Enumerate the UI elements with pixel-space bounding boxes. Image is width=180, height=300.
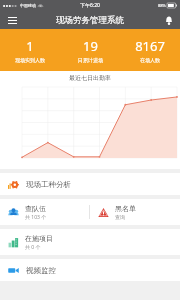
staticText: 最近七日出勤率	[0, 74, 180, 82]
button[interactable]: 现场工种分析	[0, 173, 180, 195]
staticText: 现场劳务管理系统	[56, 15, 124, 26]
staticText: 黑名单	[115, 204, 136, 213]
button[interactable]: Menu	[0, 11, 24, 29]
staticText: 查队伍	[25, 204, 46, 213]
button[interactable]: 1	[0, 29, 60, 71]
staticText: 共 0 个	[25, 244, 41, 251]
button[interactable]: 视频监控	[0, 259, 180, 281]
staticText: 现场实到人数	[15, 57, 45, 63]
staticText: 19	[83, 37, 98, 55]
staticText: 在场人数	[140, 57, 160, 63]
button[interactable]: 8167	[120, 29, 180, 71]
button[interactable]: 查队伍	[0, 199, 89, 225]
staticText: 查询	[115, 214, 125, 220]
button[interactable]: 黑名单	[90, 199, 180, 225]
staticText: 中国移动	[20, 3, 36, 8]
staticText: 1	[26, 37, 34, 55]
staticText: 在施项目	[25, 234, 53, 243]
staticText: 88%	[158, 3, 166, 8]
staticText: 8167	[135, 37, 165, 55]
staticText: 下午6:20	[80, 2, 100, 9]
staticText: 共 103 个	[25, 214, 47, 221]
staticText: 日累计进场	[78, 57, 103, 63]
button[interactable]: 在施项目	[0, 229, 90, 255]
button[interactable]: 19	[60, 29, 120, 71]
button[interactable]: Notifications	[158, 11, 180, 29]
staticText: 现场工种分析	[26, 180, 71, 189]
staticText: 视频监控	[26, 266, 56, 275]
